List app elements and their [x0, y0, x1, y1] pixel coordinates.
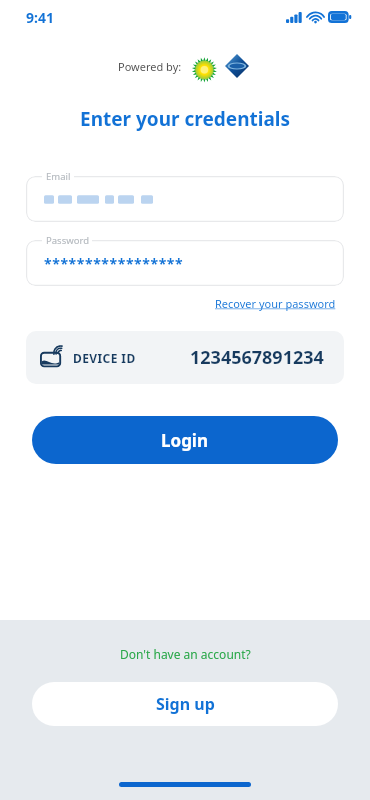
staticText: Recover your password: [215, 296, 336, 311]
staticText: Sign up: [156, 693, 215, 715]
staticText: Don't have an account?: [120, 646, 251, 662]
other: Device card: [40, 347, 66, 369]
staticText: Powered by:: [118, 59, 182, 74]
staticText: DEVICE ID: [73, 350, 136, 366]
button[interactable]: [26, 176, 344, 222]
staticText: Password: [46, 234, 89, 247]
staticText: Enter your credentials: [0, 106, 370, 132]
staticText: 9:41: [26, 8, 54, 27]
staticText: Email: [46, 170, 71, 183]
button[interactable]: *****************: [26, 240, 344, 286]
button[interactable]: Sign up: [32, 682, 338, 726]
button[interactable]: Recover your password: [213, 294, 338, 313]
staticText: *****************: [44, 254, 184, 273]
button[interactable]: Device card: [26, 331, 344, 384]
staticText: Login: [161, 429, 209, 452]
button[interactable]: Login: [32, 416, 338, 464]
staticText: 1234567891234: [190, 345, 324, 370]
